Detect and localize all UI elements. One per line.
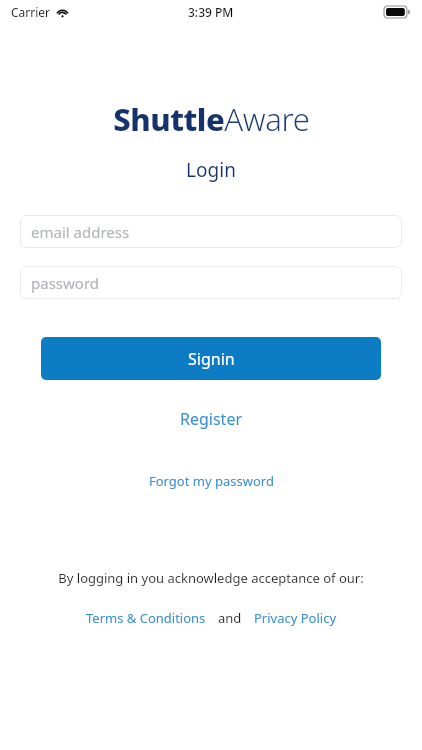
staticText: Carrier (11, 4, 51, 20)
staticText: By logging in you acknowledge acceptance… (58, 569, 364, 587)
staticText: email address (31, 222, 130, 242)
staticText: Forgot my password (149, 472, 274, 490)
staticText: Login (186, 157, 236, 183)
staticText: Signin (188, 348, 235, 370)
button[interactable]: password (20, 266, 402, 299)
staticText: Terms & Conditions (86, 609, 206, 627)
staticText: 3:39 PM (188, 4, 234, 20)
button[interactable]: email address (20, 215, 402, 248)
staticText: Register (180, 408, 243, 430)
button[interactable]: Terms & Conditions (83, 606, 209, 630)
staticText: and (218, 609, 242, 627)
button[interactable]: Register (166, 403, 257, 435)
staticText: password (31, 273, 99, 293)
button[interactable]: Signin (41, 337, 381, 380)
button[interactable]: Privacy Policy (251, 606, 340, 630)
button[interactable]: Forgot my password (137, 467, 286, 495)
staticText: Privacy Policy (254, 609, 337, 627)
staticText: ShuttleAware (113, 98, 310, 140)
